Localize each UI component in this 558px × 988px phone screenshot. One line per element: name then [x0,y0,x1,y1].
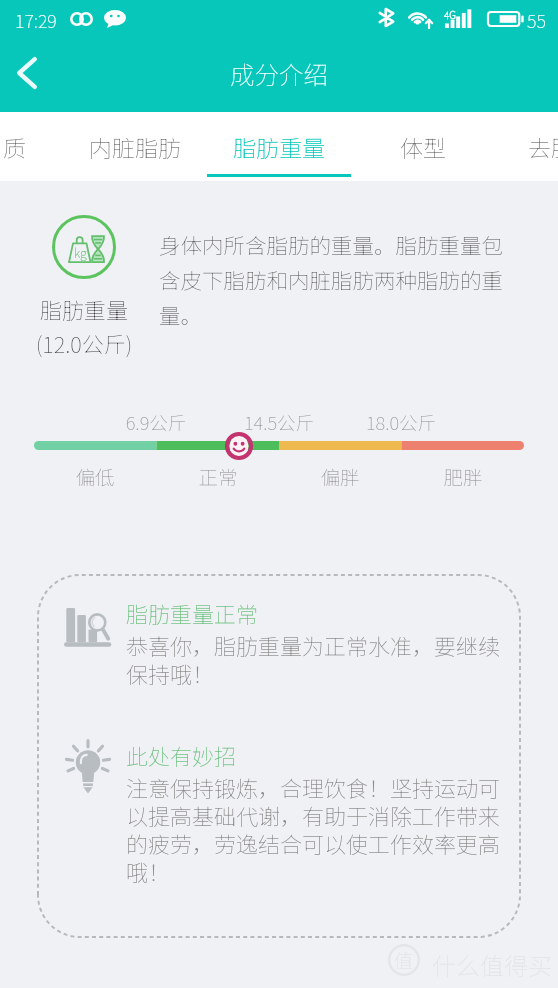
staticText: 此处有妙招 [126,739,237,771]
staticText: 正常 [148,462,288,490]
staticText: 偏胖 [270,462,410,490]
staticText: 脂肪重量 [233,130,325,163]
staticText: 恭喜你，脂肪重量为正常水准，要继续保持哦！ [126,629,520,689]
staticText: 值 [394,946,414,974]
button[interactable]: 去脂肪 [490,112,558,181]
staticText: 14.5公斤 [209,409,349,436]
button[interactable]: Back [2,48,52,98]
staticText: 什么值得买 [432,947,552,982]
staticText: 肥胖 [393,462,533,490]
staticText: 蛋白质 [0,130,26,163]
staticText: 内脏脂肪 [89,130,181,163]
button[interactable]: 脂肪重量 [207,112,351,181]
staticText: (12.0公斤) [0,327,168,359]
staticText: 18.0公斤 [331,409,471,436]
button[interactable]: 内脏脂肪 [63,112,207,181]
staticText: 身体内所含脂肪的重量。脂肪重量包含皮下脂肪和内脏脂肪两种脂肪的重量。 [159,229,511,330]
staticText: 4G [444,7,456,21]
staticText: 偏低 [25,462,165,490]
staticText: 脂肪重量正常 [126,597,259,629]
staticText: 55 [527,7,546,33]
staticText: 体型 [400,130,446,163]
staticText: 脂肪重量 [0,293,168,325]
staticText: 注意保持锻炼，合理饮食！坚持运动可以提高基础代谢，有助于消除工作带来的疲劳，劳逸… [126,771,520,887]
button[interactable]: 蛋白质 [0,112,63,181]
staticText: 6.9公斤 [86,409,226,436]
staticText: kg [74,243,87,261]
staticText: 去脂肪 [528,130,558,163]
staticText: 成分介绍 [0,56,558,91]
staticText: 17:29 [15,7,57,33]
button[interactable]: 体型 [351,112,495,181]
